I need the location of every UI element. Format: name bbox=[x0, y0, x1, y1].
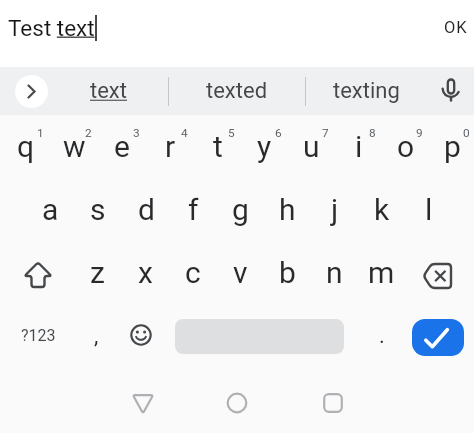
button[interactable]: j bbox=[309, 178, 356, 241]
staticText: 9 bbox=[416, 126, 423, 140]
staticText: q bbox=[17, 129, 35, 164]
button[interactable]: k bbox=[356, 178, 403, 241]
staticText: k bbox=[374, 192, 390, 227]
button[interactable]: n bbox=[309, 241, 356, 303]
button[interactable]: . bbox=[356, 303, 403, 368]
button[interactable]: g bbox=[215, 178, 262, 241]
staticText: text bbox=[90, 78, 127, 104]
button[interactable]: u bbox=[286, 115, 333, 178]
button[interactable]: p bbox=[427, 115, 474, 178]
button[interactable] bbox=[0, 241, 71, 303]
staticText: 5 bbox=[228, 126, 235, 140]
button[interactable]: x bbox=[119, 241, 167, 303]
staticText: 2 bbox=[85, 126, 92, 140]
staticText: a bbox=[42, 192, 59, 227]
staticText: Test text bbox=[8, 15, 95, 41]
staticText: v bbox=[233, 255, 248, 290]
staticText: z bbox=[90, 255, 105, 290]
button[interactable]: a bbox=[24, 178, 72, 241]
staticText: 4 bbox=[181, 126, 188, 140]
button[interactable]: r bbox=[144, 115, 192, 178]
staticText: x bbox=[138, 255, 153, 290]
staticText: s bbox=[90, 192, 106, 227]
button[interactable]: e bbox=[96, 115, 144, 178]
button[interactable] bbox=[412, 319, 464, 356]
staticText: 6 bbox=[275, 126, 282, 140]
staticText: b bbox=[279, 255, 296, 290]
staticText: o bbox=[397, 129, 415, 164]
button[interactable]: , bbox=[71, 303, 118, 368]
staticText: 1 bbox=[37, 126, 44, 140]
button[interactable]: q bbox=[0, 115, 48, 178]
staticText: n bbox=[326, 255, 343, 290]
button[interactable]: d bbox=[120, 178, 168, 241]
button[interactable]: z bbox=[71, 241, 119, 303]
staticText: w bbox=[63, 129, 86, 164]
button[interactable]: m bbox=[356, 241, 403, 303]
button[interactable]: texted bbox=[169, 67, 305, 115]
staticText: 3 bbox=[133, 126, 140, 140]
staticText: 8 bbox=[369, 126, 376, 140]
button[interactable]: ?123 bbox=[0, 303, 71, 368]
staticText: texting bbox=[333, 78, 400, 104]
button[interactable]: s bbox=[72, 178, 120, 241]
staticText: ?123 bbox=[21, 326, 56, 345]
button[interactable] bbox=[403, 241, 474, 303]
button[interactable]: l bbox=[403, 178, 450, 241]
button[interactable]: t bbox=[192, 115, 239, 178]
staticText: texted bbox=[206, 78, 268, 104]
staticText: e bbox=[114, 129, 130, 164]
button[interactable] bbox=[309, 379, 356, 426]
staticText: OK bbox=[444, 18, 468, 37]
staticText: y bbox=[257, 129, 272, 164]
staticText: g bbox=[232, 192, 249, 227]
button[interactable] bbox=[119, 379, 166, 426]
staticText: t bbox=[213, 129, 223, 164]
staticText: c bbox=[185, 255, 201, 290]
staticText: r bbox=[165, 129, 176, 164]
button[interactable]: v bbox=[215, 241, 262, 303]
staticText: d bbox=[138, 192, 155, 227]
staticText: j bbox=[331, 192, 339, 227]
button[interactable]: h bbox=[262, 178, 309, 241]
button[interactable]: o bbox=[380, 115, 427, 178]
staticText: l bbox=[425, 192, 433, 227]
staticText: . bbox=[379, 323, 385, 349]
staticText: h bbox=[279, 192, 296, 227]
button[interactable]: texting bbox=[306, 67, 426, 115]
button[interactable] bbox=[213, 379, 260, 426]
staticText: 7 bbox=[322, 126, 329, 140]
button[interactable]: text bbox=[48, 67, 168, 115]
button[interactable]: OK bbox=[438, 12, 474, 43]
button[interactable]: c bbox=[167, 241, 215, 303]
staticText: i bbox=[355, 129, 363, 164]
button[interactable]: b bbox=[262, 241, 309, 303]
button[interactable] bbox=[118, 303, 165, 368]
button[interactable] bbox=[15, 75, 48, 108]
button[interactable]: y bbox=[239, 115, 286, 178]
staticText: , bbox=[94, 323, 99, 349]
staticText: m bbox=[368, 255, 395, 290]
staticText: u bbox=[303, 129, 320, 164]
staticText: p bbox=[444, 129, 461, 164]
button[interactable]: w bbox=[48, 115, 96, 178]
button[interactable]: f bbox=[168, 178, 215, 241]
button[interactable]: i bbox=[333, 115, 380, 178]
staticText: 0 bbox=[463, 126, 470, 140]
staticText: f bbox=[188, 192, 199, 227]
button[interactable] bbox=[428, 67, 474, 115]
